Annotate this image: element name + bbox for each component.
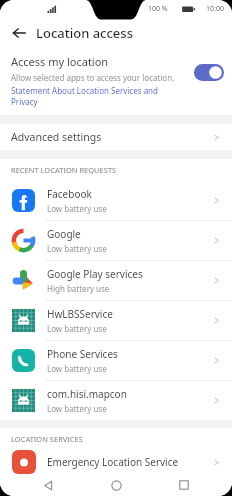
button[interactable]: Home	[96, 474, 136, 496]
button[interactable]: com.hisi.mapcon	[0, 381, 232, 420]
button[interactable]: Access my location	[0, 48, 232, 115]
staticText: High battery use	[47, 283, 110, 294]
staticText: Facebook	[47, 187, 92, 201]
staticText: Access my location	[11, 54, 109, 69]
staticText: Low battery use	[47, 243, 107, 254]
staticText: RECENT LOCATION REQUESTS	[11, 165, 117, 175]
button[interactable]: Back	[8, 18, 30, 48]
staticText: Emergency Location Service	[47, 455, 179, 469]
staticText: com.hisi.mapcon	[47, 387, 127, 401]
staticText: Low battery use	[47, 323, 107, 334]
staticText: Allow selected apps to access your locat…	[11, 72, 175, 83]
staticText: Statement About Location Services and Pr…	[11, 85, 163, 107]
staticText: HwLBSService	[47, 307, 113, 321]
button[interactable]: Google	[0, 221, 232, 260]
button[interactable]: Emergency Location Service	[0, 450, 232, 474]
button[interactable]: HwLBSService	[0, 301, 232, 340]
staticText: Phone Services	[47, 347, 118, 361]
staticText: 10:00	[206, 4, 224, 14]
staticText: Google	[47, 227, 81, 241]
button[interactable]: Access my location toggle	[194, 64, 224, 81]
staticText: Low battery use	[47, 403, 107, 414]
button[interactable]: Recent apps	[164, 474, 204, 496]
button[interactable]: Facebook	[0, 181, 232, 220]
button[interactable]: Back	[28, 474, 68, 496]
staticText: LOCATION SERVICES	[11, 434, 83, 444]
staticText: Google Play services	[47, 267, 143, 281]
button[interactable]: Advanced settings	[0, 124, 232, 150]
staticText: 100 %	[148, 4, 168, 14]
staticText: Low battery use	[47, 203, 107, 214]
staticText: Low battery use	[47, 363, 107, 374]
staticText: Advanced settings	[11, 130, 212, 144]
staticText: Location access	[36, 24, 133, 42]
button[interactable]: Google Play services	[0, 261, 232, 300]
button[interactable]: Phone Services	[0, 341, 232, 380]
